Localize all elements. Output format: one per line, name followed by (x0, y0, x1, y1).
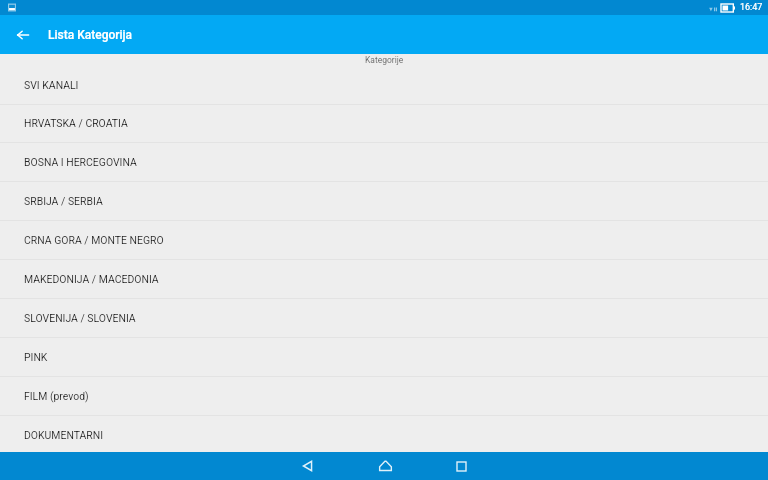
button[interactable]: SRBIJA / SERBIA (0, 182, 768, 221)
button[interactable]: Home (368, 452, 402, 480)
staticText: 16:47 (740, 2, 763, 13)
button[interactable]: PINK (0, 338, 768, 377)
button[interactable]: MAKEDONIJA / MACEDONIA (0, 260, 768, 299)
staticText: DOKUMENTARNI (24, 429, 104, 441)
staticText: FILM (prevod) (24, 390, 89, 402)
staticText: SRBIJA / SERBIA (24, 195, 103, 207)
staticText: SVI KANALI (24, 79, 79, 91)
button[interactable]: Back (290, 452, 324, 480)
button[interactable]: CRNA GORA / MONTE NEGRO (0, 221, 768, 260)
staticText: BOSNA I HERCEGOVINA (24, 156, 137, 168)
button[interactable]: Recent apps (444, 452, 478, 480)
button[interactable]: FILM (prevod) (0, 377, 768, 416)
staticText: PINK (24, 351, 48, 363)
button[interactable]: DOKUMENTARNI (0, 416, 768, 455)
staticText: MAKEDONIJA / MACEDONIA (24, 273, 159, 285)
staticText: CRNA GORA / MONTE NEGRO (24, 234, 164, 246)
button[interactable]: Back (0, 15, 45, 54)
staticText: SLOVENIJA / SLOVENIA (24, 312, 136, 324)
button[interactable]: BOSNA I HERCEGOVINA (0, 143, 768, 182)
button[interactable]: SLOVENIJA / SLOVENIA (0, 299, 768, 338)
button[interactable]: SVI KANALI (0, 66, 768, 105)
staticText: HRVATSKA / CROATIA (24, 117, 128, 129)
staticText: Kategorije (365, 55, 404, 65)
staticText: Lista Kategorija (48, 28, 133, 42)
button[interactable]: HRVATSKA / CROATIA (0, 104, 768, 143)
